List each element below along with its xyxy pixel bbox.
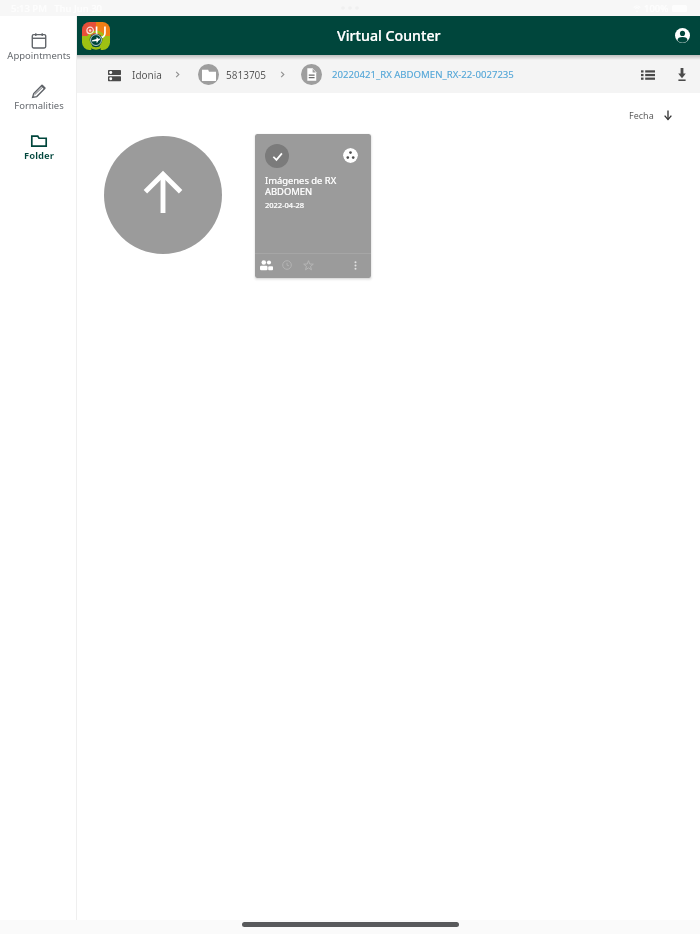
staticText: Fecha [629,109,654,121]
button[interactable]: List view [637,63,659,85]
staticText: Appointments [7,49,71,62]
button[interactable]: Up one level [104,136,222,254]
staticText: Idonia [132,68,162,82]
staticText: Formalities [14,99,64,112]
button[interactable]: Favorite [299,256,317,274]
button[interactable]: Selected [255,134,371,278]
staticText: Imágenes de RX ABDOMEN [265,174,337,197]
staticText: 5813705 [226,68,267,82]
button[interactable]: 20220421_RX ABDOMEN_RX-22-0027235 [301,64,514,85]
staticText: Virtual Counter [337,26,441,45]
button[interactable]: Recent [278,256,296,274]
button[interactable]: Folder [0,133,77,162]
button[interactable]: Account [675,28,690,43]
button[interactable]: Download [671,63,693,85]
button[interactable]: Series [343,148,358,163]
button[interactable]: Idonia [108,68,162,82]
button[interactable]: Appointments [0,33,77,62]
button[interactable]: Formalities [0,83,77,112]
staticText: 2022-04-28 [265,200,305,210]
button[interactable]: Selected [265,144,289,168]
button[interactable]: App logo [82,22,110,50]
button[interactable]: More options [346,256,364,274]
button[interactable]: 5813705 [198,64,267,85]
button[interactable]: Fecha [629,109,674,121]
button[interactable]: People [257,256,275,274]
staticText: 20220421_RX ABDOMEN_RX-22-0027235 [332,68,514,81]
staticText: Folder [24,149,54,162]
